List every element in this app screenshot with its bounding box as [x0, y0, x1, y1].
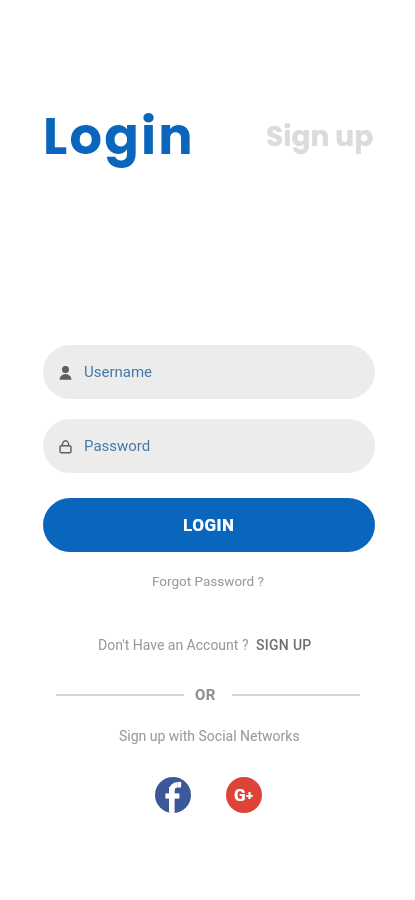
staticText: Username	[84, 363, 153, 381]
button[interactable]: Username	[43, 345, 375, 399]
button[interactable]: Forgot Password ?	[152, 573, 264, 589]
staticText: Login	[43, 100, 195, 171]
button[interactable]: Password	[43, 419, 375, 473]
button[interactable]: SIGN UP	[256, 637, 312, 653]
staticText: LOGIN	[183, 515, 235, 535]
button[interactable]: LOGIN	[43, 498, 375, 552]
button[interactable]: Sign up	[266, 117, 374, 156]
staticText: G	[234, 785, 246, 805]
button[interactable]	[155, 777, 191, 813]
staticText: OR	[195, 686, 216, 704]
staticText: Sign up with Social Networks	[119, 728, 300, 744]
staticText: Password	[84, 437, 151, 455]
button[interactable]: G	[226, 777, 262, 813]
staticText: +	[246, 788, 254, 803]
staticText: Don't Have an Account ?	[98, 637, 252, 653]
